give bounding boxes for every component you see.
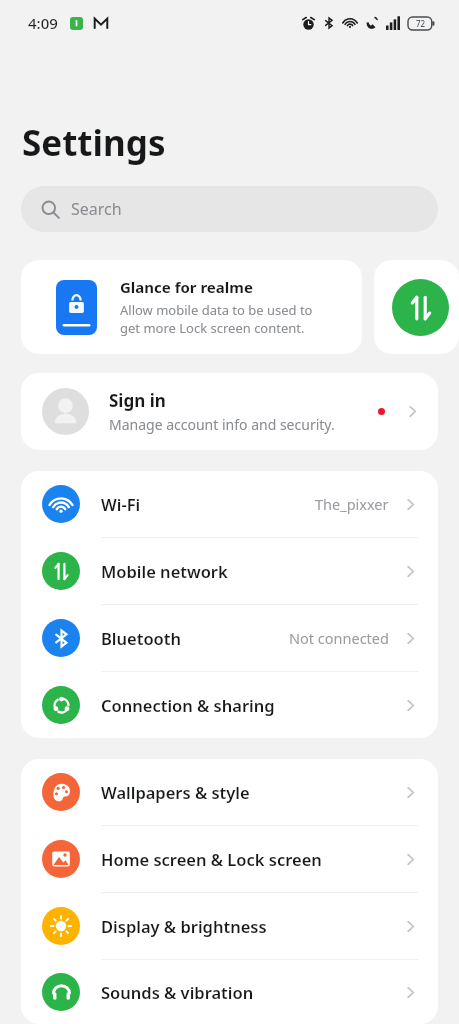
- button[interactable]: [374, 260, 459, 354]
- button[interactable]: Home screen & Lock screen: [21, 826, 438, 892]
- button[interactable]: Bluetooth: [21, 605, 438, 671]
- button[interactable]: Wi-Fi: [21, 471, 438, 537]
- button[interactable]: Mobile network: [21, 538, 438, 604]
- staticText: Allow mobile data to be used to: [120, 301, 313, 319]
- staticText: Manage account info and security.: [109, 415, 335, 434]
- button[interactable]: Display & brightness: [21, 893, 438, 959]
- staticText: Search: [71, 198, 122, 220]
- staticText: Glance for realme: [120, 277, 253, 297]
- staticText: Home screen & Lock screen: [101, 848, 402, 870]
- staticText: Not connected: [289, 628, 389, 648]
- staticText: get more Lock screen content.: [120, 319, 305, 337]
- staticText: Sounds & vibration: [101, 981, 402, 1003]
- staticText: 4:09: [28, 13, 58, 33]
- staticText: 72: [416, 18, 426, 29]
- staticText: Display & brightness: [101, 915, 402, 937]
- button[interactable]: Wallpapers & style: [21, 759, 438, 825]
- staticText: Mobile network: [101, 560, 402, 582]
- staticText: Sign in: [109, 389, 166, 412]
- staticText: Bluetooth: [101, 627, 289, 649]
- button[interactable]: Search: [21, 186, 438, 232]
- staticText: Wi-Fi: [101, 493, 315, 515]
- button[interactable]: Sounds & vibration: [21, 960, 438, 1024]
- staticText: Wallpapers & style: [101, 781, 402, 803]
- button[interactable]: Connection & sharing: [21, 672, 438, 738]
- staticText: The_pixxer: [315, 494, 389, 514]
- button[interactable]: Glance for realme: [21, 260, 362, 354]
- staticText: Settings: [22, 119, 166, 167]
- button[interactable]: Sign in: [21, 373, 438, 450]
- staticText: Connection & sharing: [101, 694, 402, 716]
